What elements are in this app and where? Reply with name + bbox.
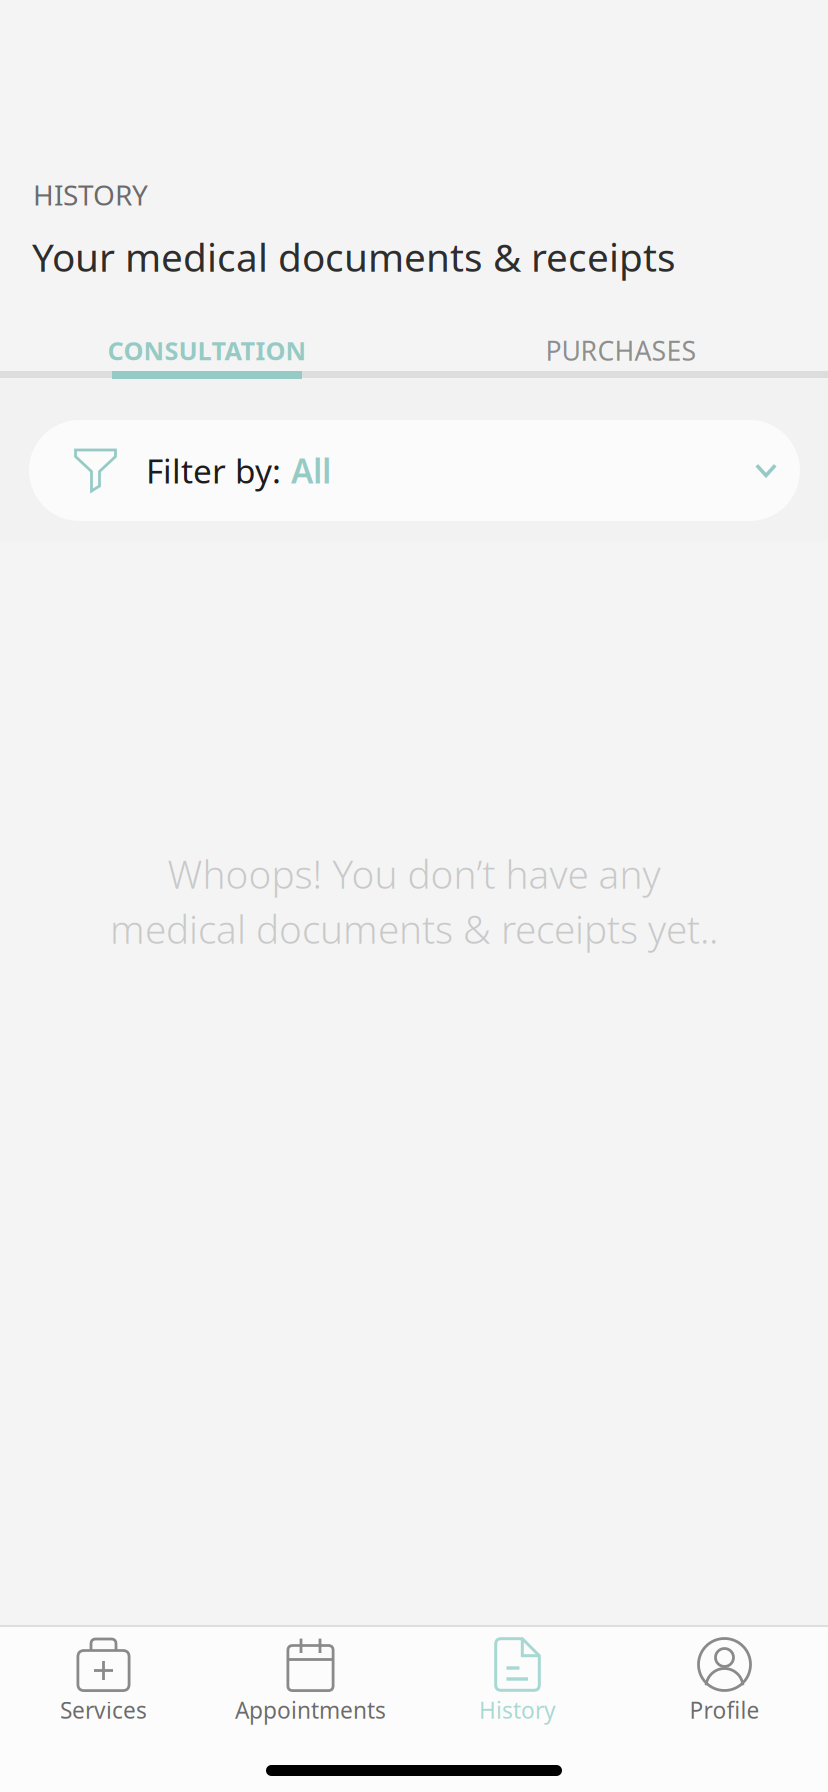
staticText: CONSULTATION xyxy=(107,334,306,367)
staticText: Profile xyxy=(689,1695,759,1725)
button[interactable]: PURCHASES xyxy=(414,322,828,379)
button[interactable]: Services xyxy=(0,1627,207,1737)
staticText: HISTORY xyxy=(33,176,148,213)
staticText: Appointments xyxy=(235,1695,386,1725)
button[interactable]: History xyxy=(414,1627,621,1737)
button[interactable]: Appointments xyxy=(207,1627,414,1737)
staticText: medical documents & receipts yet.. xyxy=(110,903,718,954)
staticText: Your medical documents & receipts xyxy=(32,231,676,282)
button[interactable]: Profile xyxy=(621,1627,828,1737)
staticText: All xyxy=(291,448,331,493)
staticText: Whoops! You don’t have any xyxy=(167,848,660,899)
staticText: Filter by: xyxy=(146,448,281,493)
staticText: History xyxy=(479,1695,556,1725)
button[interactable]: CONSULTATION xyxy=(0,322,414,379)
button[interactable]: Filter by: xyxy=(29,420,800,521)
staticText: PURCHASES xyxy=(545,333,696,368)
staticText: Services xyxy=(60,1695,147,1725)
